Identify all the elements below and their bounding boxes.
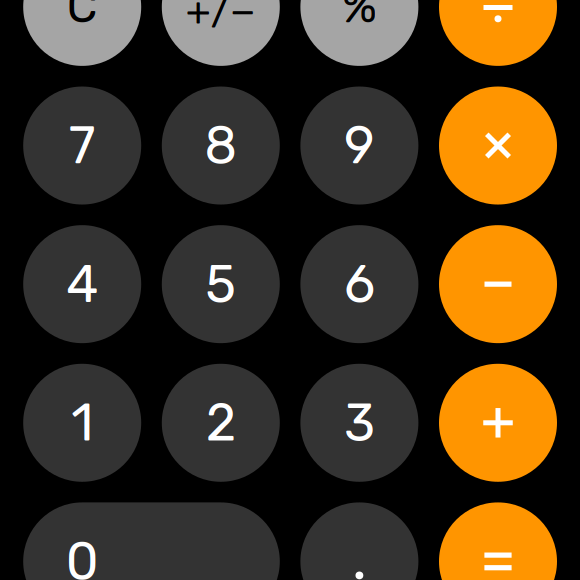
staticText: 5 [205,253,236,315]
button[interactable]: 2 [162,364,280,482]
button[interactable]: Plus minus [162,0,280,66]
staticText: 4 [66,253,98,315]
button[interactable]: 7 [23,86,141,204]
staticText: 8 [204,115,237,176]
button[interactable]: Plus [439,364,557,482]
button[interactable]: 4 [23,225,141,343]
staticText: 3 [344,392,375,453]
button[interactable]: 8 [162,86,280,204]
button[interactable]: 5 [162,225,280,343]
staticText: % [342,0,377,34]
button[interactable]: Divide [439,0,557,66]
button[interactable]: Equals [439,502,557,580]
staticText: C [67,0,98,34]
button[interactable]: 1 [23,364,141,482]
button[interactable]: Percent [300,0,418,66]
staticText: 6 [344,253,375,315]
staticText: 1 [71,392,93,453]
staticText: 2 [206,392,236,453]
button[interactable]: Clear [23,0,141,66]
staticText: 0 [66,531,99,580]
button[interactable]: 3 [300,364,418,482]
button[interactable]: 9 [300,86,418,204]
staticText: +/− [186,0,256,35]
button[interactable]: Minus [439,225,557,343]
button[interactable]: 6 [300,225,418,343]
button[interactable]: Multiply [439,86,557,204]
button[interactable]: Decimal point [300,502,418,580]
staticText: 7 [69,115,96,176]
button[interactable]: 0 [23,502,280,580]
staticText: 9 [344,115,375,176]
